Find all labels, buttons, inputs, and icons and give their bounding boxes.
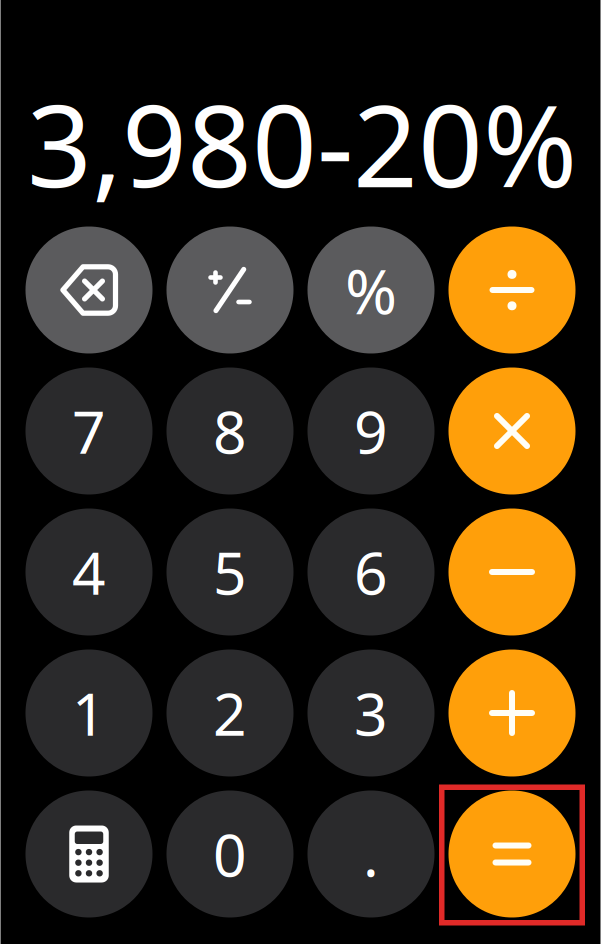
button[interactable]: 5	[166, 508, 293, 635]
button[interactable]: 6	[307, 508, 434, 635]
button[interactable]: .	[307, 790, 434, 917]
staticText: .	[363, 815, 379, 893]
button[interactable]: Divide	[448, 226, 575, 353]
staticText: 8	[213, 392, 247, 470]
button[interactable]: 3	[307, 649, 434, 776]
button[interactable]: 8	[166, 367, 293, 494]
button[interactable]: 1	[25, 649, 152, 776]
staticText: 1	[72, 674, 106, 752]
staticText: 6	[354, 533, 388, 611]
button[interactable]: 2	[166, 649, 293, 776]
staticText: %	[345, 248, 397, 332]
staticText: 5	[213, 533, 247, 611]
staticText: 3,980-20%	[27, 68, 577, 218]
button[interactable]: Multiply	[448, 367, 575, 494]
button[interactable]: 7	[25, 367, 152, 494]
staticText: 0	[213, 815, 247, 893]
button[interactable]: 0	[166, 790, 293, 917]
staticText: 9	[354, 392, 388, 470]
button[interactable]: Add	[448, 649, 575, 776]
button[interactable]: Equals	[448, 790, 575, 917]
staticText: 7	[72, 392, 106, 470]
button[interactable]: Toggle sign	[166, 226, 293, 353]
button[interactable]: Subtract	[448, 508, 575, 635]
button[interactable]: Delete	[25, 226, 152, 353]
staticText: 3	[354, 674, 388, 752]
button[interactable]: 4	[25, 508, 152, 635]
staticText: 4	[72, 533, 106, 611]
button[interactable]: %	[307, 226, 434, 353]
staticText: 2	[213, 674, 247, 752]
button[interactable]: Calculator mode	[25, 790, 152, 917]
button[interactable]: 9	[307, 367, 434, 494]
